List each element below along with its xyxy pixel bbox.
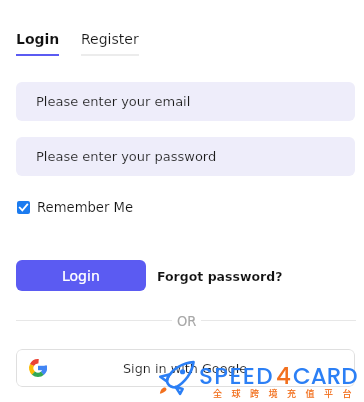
button[interactable]: Forgot password? [157, 269, 283, 284]
staticText: 全球跨境充值平台 [213, 387, 362, 400]
staticText: Forgot password? [157, 269, 283, 284]
button[interactable]: Remember Me [17, 200, 134, 215]
staticText: Please enter your email [36, 94, 191, 109]
staticText: Sign in with Google [123, 361, 248, 376]
staticText: 4 [276, 360, 291, 392]
staticText: Please enter your password [36, 149, 217, 164]
button[interactable]: Please enter your password [16, 137, 355, 176]
button[interactable]: Please enter your email [16, 82, 355, 121]
button[interactable]: Login [16, 31, 60, 47]
staticText: Register [81, 31, 139, 47]
staticText: Login [62, 268, 100, 284]
other: Speed4Card logo [159, 360, 195, 394]
button[interactable]: Sign in with Google [16, 349, 355, 387]
other: Google logo [29, 359, 47, 377]
button[interactable]: Login [16, 260, 146, 291]
staticText: Login [16, 31, 60, 47]
staticText: OR [177, 313, 197, 328]
staticText: Remember Me [37, 200, 134, 215]
staticText: CARD [293, 360, 358, 392]
staticText: SPEED [199, 360, 274, 392]
button[interactable]: Register [81, 31, 139, 47]
